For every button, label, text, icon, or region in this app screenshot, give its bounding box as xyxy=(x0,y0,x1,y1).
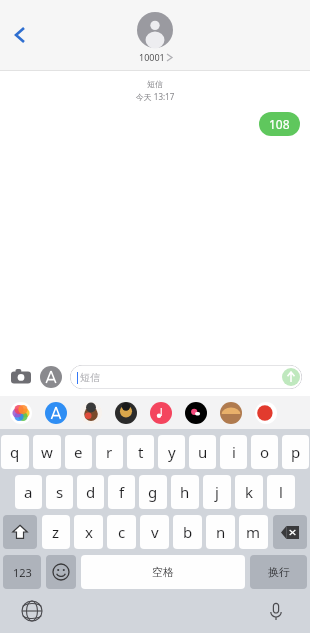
staticText: o xyxy=(260,442,270,462)
button[interactable]: w xyxy=(33,435,61,469)
staticText: 短信 xyxy=(80,371,100,384)
button[interactable]: 换行 xyxy=(250,555,307,589)
staticText: 10001 xyxy=(139,51,165,63)
staticText: f xyxy=(119,482,125,502)
button[interactable]: d xyxy=(77,475,104,509)
staticText: m xyxy=(246,522,261,542)
button[interactable]: App 6 xyxy=(220,402,242,424)
staticText: w xyxy=(41,442,53,462)
button[interactable]: s xyxy=(46,475,73,509)
button[interactable]: m xyxy=(239,515,268,549)
button[interactable]: App 4 xyxy=(150,402,172,424)
staticText: g xyxy=(148,482,158,502)
button[interactable]: App 0 xyxy=(10,402,32,424)
button[interactable]: r xyxy=(96,435,123,469)
staticText: v xyxy=(151,522,159,542)
staticText: i xyxy=(232,442,236,462)
button[interactable]: 短信 xyxy=(70,365,302,389)
staticText: 换行 xyxy=(268,565,290,579)
button[interactable]: 空格 xyxy=(81,555,245,589)
staticText: t xyxy=(138,442,144,462)
button[interactable]: Dictation xyxy=(266,601,286,621)
button[interactable]: App 7 xyxy=(255,402,277,424)
button[interactable]: Camera xyxy=(8,364,34,390)
button[interactable]: Send xyxy=(282,368,300,386)
staticText: a xyxy=(24,482,33,502)
button[interactable]: o xyxy=(251,435,278,469)
button[interactable]: 123 xyxy=(3,555,41,589)
button[interactable]: g xyxy=(139,475,167,509)
button[interactable]: l xyxy=(267,475,295,509)
button[interactable]: c xyxy=(107,515,136,549)
staticText: p xyxy=(291,442,301,462)
staticText: d xyxy=(86,482,96,502)
button[interactable]: y xyxy=(158,435,185,469)
staticText: y xyxy=(168,442,176,462)
button[interactable]: 108 xyxy=(259,112,300,136)
button[interactable]: k xyxy=(235,475,263,509)
staticText: q xyxy=(10,442,20,462)
button[interactable]: App Store xyxy=(40,366,62,388)
button[interactable]: b xyxy=(173,515,202,549)
button[interactable]: z xyxy=(42,515,70,549)
button[interactable]: App 5 xyxy=(185,402,207,424)
button[interactable]: n xyxy=(206,515,235,549)
button[interactable]: p xyxy=(282,435,309,469)
button[interactable]: j xyxy=(203,475,231,509)
button[interactable]: a xyxy=(15,475,42,509)
staticText: n xyxy=(216,522,226,542)
button[interactable]: 10001 xyxy=(129,12,181,63)
staticText: c xyxy=(118,522,126,542)
button[interactable]: Back xyxy=(4,19,36,51)
button[interactable]: Shift xyxy=(3,515,37,549)
button[interactable]: x xyxy=(74,515,103,549)
staticText: e xyxy=(74,442,83,462)
button[interactable]: v xyxy=(140,515,169,549)
button[interactable]: App 2 xyxy=(80,402,102,424)
staticText: r xyxy=(106,442,113,462)
button[interactable]: Change keyboard xyxy=(22,601,42,621)
staticText: 108 xyxy=(269,116,290,132)
button[interactable]: u xyxy=(189,435,216,469)
button[interactable]: i xyxy=(220,435,247,469)
staticText: 空格 xyxy=(152,565,174,579)
button[interactable]: Emoji xyxy=(46,555,76,589)
staticText: b xyxy=(183,522,193,542)
staticText: x xyxy=(85,522,93,542)
button[interactable]: q xyxy=(1,435,29,469)
staticText: 123 xyxy=(13,565,32,580)
button[interactable]: App 1 xyxy=(45,402,67,424)
button[interactable]: e xyxy=(65,435,92,469)
staticText: k xyxy=(245,482,254,502)
button[interactable]: h xyxy=(171,475,199,509)
button[interactable]: t xyxy=(127,435,154,469)
button[interactable]: f xyxy=(108,475,135,509)
staticText: z xyxy=(52,522,60,542)
button[interactable]: Backspace xyxy=(273,515,307,549)
staticText: s xyxy=(56,482,64,502)
staticText: l xyxy=(279,482,283,502)
staticText: u xyxy=(198,442,208,462)
button[interactable]: App 3 xyxy=(115,402,137,424)
staticText: 今天 13:17 xyxy=(0,91,310,102)
staticText: 短信 xyxy=(0,79,310,89)
staticText: j xyxy=(215,482,219,502)
staticText: h xyxy=(180,482,190,502)
